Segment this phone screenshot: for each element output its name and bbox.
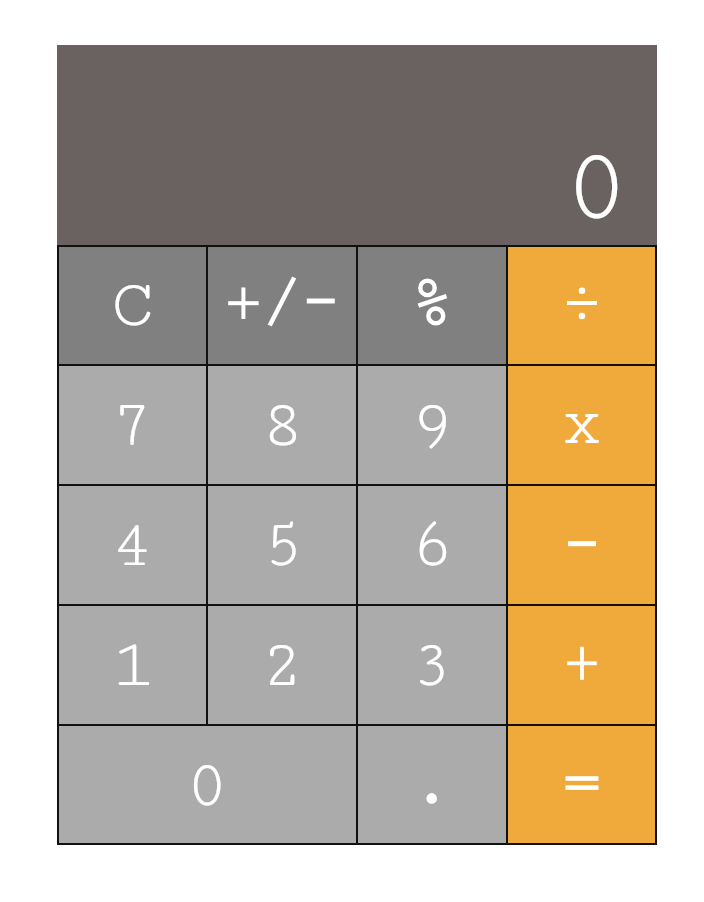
button[interactable]: 4 [58, 486, 206, 604]
button[interactable] [508, 486, 656, 604]
button[interactable]: x [508, 366, 656, 484]
button[interactable] [508, 606, 656, 724]
staticText: 0 [564, 128, 630, 247]
button[interactable]: 9 [358, 366, 506, 484]
button[interactable] [358, 726, 506, 844]
staticText: 6 [411, 507, 454, 584]
button[interactable]: 7 [58, 366, 206, 484]
button[interactable] [208, 246, 356, 364]
staticText: x [559, 381, 605, 464]
staticText: C [111, 267, 154, 344]
staticText: 7 [111, 387, 154, 464]
staticText: 2 [261, 627, 304, 704]
button[interactable] [358, 246, 506, 364]
button[interactable]: 1 [58, 606, 206, 724]
staticText: 8 [261, 387, 304, 464]
staticText: 1 [111, 627, 154, 704]
staticText: 0 [186, 747, 229, 824]
staticText: 3 [411, 627, 454, 704]
button[interactable]: 8 [208, 366, 356, 484]
staticText: 9 [411, 387, 454, 464]
button[interactable]: 5 [208, 486, 356, 604]
button[interactable]: 6 [358, 486, 506, 604]
button[interactable]: 2 [208, 606, 356, 724]
staticText: 5 [261, 507, 304, 584]
button[interactable]: 0 [58, 726, 356, 844]
button[interactable] [508, 246, 656, 364]
staticText: 4 [111, 507, 154, 584]
button[interactable] [508, 726, 656, 844]
button[interactable]: C [58, 246, 206, 364]
button[interactable]: 3 [358, 606, 506, 724]
